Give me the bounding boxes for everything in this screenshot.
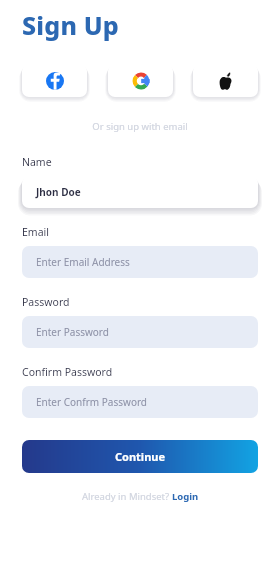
staticText: Email [22,225,49,239]
staticText: Password [22,295,70,309]
button[interactable]: Sign up with Apple [193,64,258,97]
staticText: Sign Up [22,8,119,42]
button[interactable]: Sign up with Google [108,64,173,97]
staticText: Or sign up with email [0,120,280,133]
button[interactable]: Enter Email Address [22,246,258,278]
staticText: Jhon Doe [36,185,81,199]
staticText: Enter Password [36,325,109,339]
staticText: Already in Mindset? [82,490,172,503]
staticText: Enter Email Address [36,255,130,269]
button[interactable]: Sign up with Facebook [22,64,87,97]
button[interactable]: Login [172,490,199,503]
staticText: Login [172,490,199,503]
staticText: Name [22,155,52,169]
button[interactable]: Enter Confrm Password [22,386,258,418]
staticText: Enter Confrm Password [36,395,148,409]
staticText: Confirm Password [22,365,113,379]
button[interactable]: Continue [22,440,258,473]
button[interactable]: Jhon Doe [22,176,258,208]
staticText: Continue [115,449,166,464]
button[interactable]: Enter Password [22,316,258,348]
